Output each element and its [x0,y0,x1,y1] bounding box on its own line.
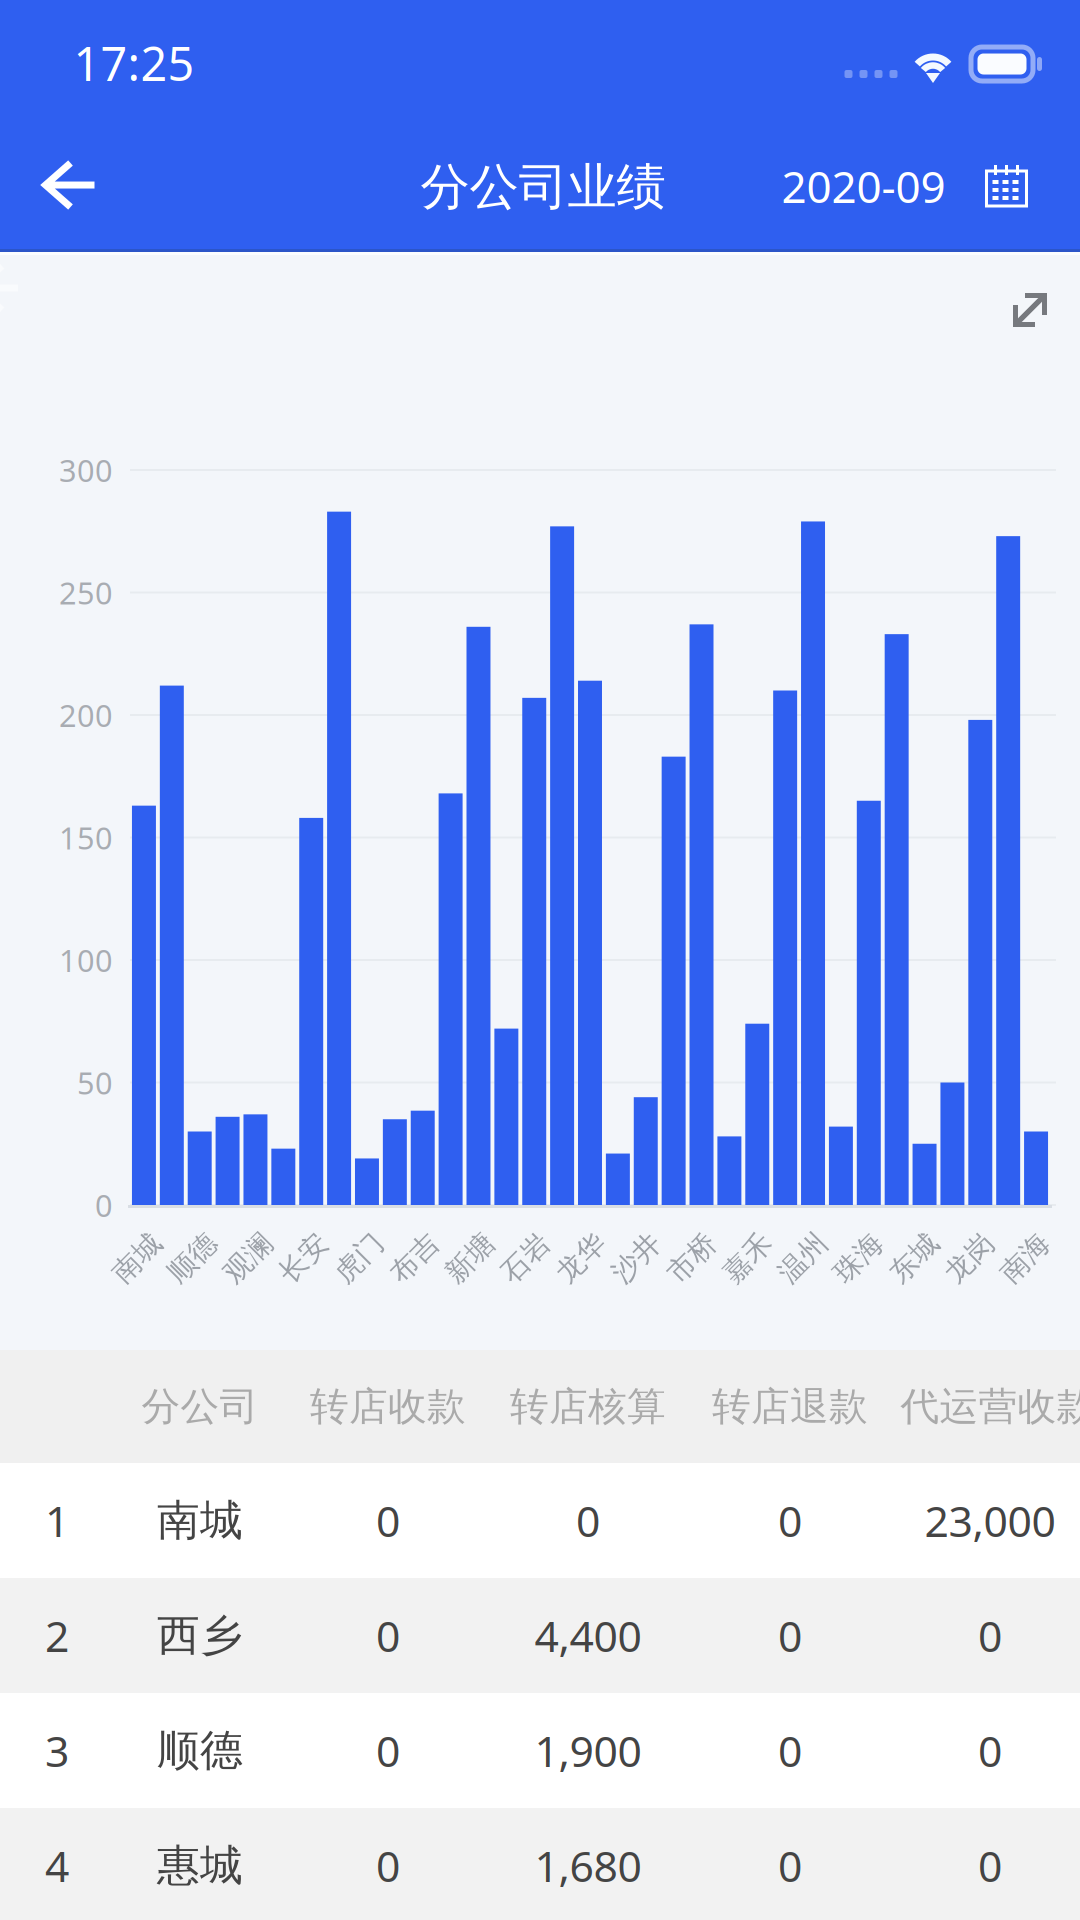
staticText: 石岩 [497,1240,553,1276]
staticText: 0 [95,1184,113,1226]
staticText: 珠海 [830,1240,886,1276]
button[interactable]: 2020-09 [781,116,1028,256]
staticText: 250 [59,572,113,613]
staticText: 0 [778,1606,802,1664]
staticText: 西乡 [157,1609,243,1662]
staticText: 0 [376,1606,400,1664]
staticText: 分公司业绩 [420,156,665,218]
staticText: 4,400 [534,1606,641,1664]
staticText: 1 [45,1491,69,1549]
staticText: 分公司 [141,1382,258,1431]
staticText: 东城 [886,1240,942,1276]
staticText: 1,900 [534,1721,641,1779]
staticText: 惠城 [157,1839,243,1892]
staticText: 23,000 [924,1491,1055,1549]
staticText: 顺德 [157,1724,243,1777]
staticText: 龙岗 [941,1240,997,1276]
staticText: 市桥 [664,1240,720,1276]
staticText: 200 [59,694,113,736]
staticText: 4 [45,1836,69,1894]
staticText: 150 [59,817,113,858]
staticText: 0 [376,1721,400,1779]
staticText: 代运营收款 [900,1382,1080,1431]
button[interactable]: 返回 [0,114,140,256]
staticText: 0 [376,1836,400,1894]
staticText: 温州 [775,1240,831,1276]
staticText: 0 [778,1721,802,1779]
staticText: 100 [59,939,113,981]
staticText: 南海 [997,1240,1053,1276]
button[interactable]: 全屏 [975,255,1080,365]
staticText: 沙井 [608,1240,664,1276]
staticText: 300 [59,449,113,491]
staticText: 南城 [157,1494,243,1547]
staticText: 2 [45,1606,69,1664]
staticText: 嘉禾 [719,1240,775,1276]
staticText: 1,680 [534,1836,641,1894]
staticText: 布吉 [386,1240,442,1276]
staticText: 南城 [109,1240,165,1276]
staticText: 转店退款 [712,1382,868,1431]
staticText: 0 [778,1491,802,1549]
staticText: 0 [576,1491,600,1549]
staticText: 龙华 [553,1240,609,1276]
staticText: 顺德 [164,1240,220,1276]
staticText: 17:25 [73,31,194,95]
staticText: 0 [778,1836,802,1894]
staticText: 0 [978,1606,1002,1664]
staticText: 转店收款 [310,1382,466,1431]
staticText: 0 [376,1491,400,1549]
staticText: 观澜 [220,1240,276,1276]
staticText: 虎门 [331,1240,387,1276]
staticText: 0 [978,1836,1002,1894]
staticText: 50 [77,1062,113,1103]
staticText: 新塘 [442,1240,498,1276]
staticText: 长安 [275,1240,331,1276]
staticText: 3 [45,1721,69,1779]
staticText: 2020-09 [781,156,945,216]
staticText: 0 [978,1721,1002,1779]
staticText: 转店核算 [510,1382,666,1431]
